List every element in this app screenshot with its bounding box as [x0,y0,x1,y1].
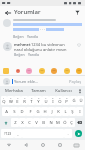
button[interactable]: Send [75,130,82,137]
staticText: A [5,109,8,115]
staticText: C [28,120,31,126]
button[interactable]: 1 [1,96,7,105]
staticText: 1 [3,96,5,99]
staticText: M [56,120,60,126]
button[interactable]: Yanıtla [28,52,39,57]
staticText: 4 [24,96,26,99]
button[interactable]: K [55,107,62,116]
button[interactable]: 7 [42,96,49,105]
staticText: Merhaba [5,88,23,94]
button[interactable]: S [10,107,18,116]
staticText: Yorumlar [14,8,41,16]
button[interactable]: Hide keyboard [0,140,17,150]
button[interactable]: Filter [73,8,82,17]
button[interactable]: Emoji [76,68,82,74]
button[interactable]: I [76,107,83,116]
button[interactable]: Shift [1,118,11,127]
staticText: , [17,131,19,137]
button[interactable]: D [18,107,26,116]
staticText: 8 [52,96,54,99]
staticText: 6 [38,96,40,99]
button[interactable]: Paylaş [69,79,82,84]
button[interactable]: Emoji [51,68,57,74]
staticText: I [52,99,54,105]
button[interactable]: Ü [77,96,84,105]
staticText: Ü [79,98,83,104]
button[interactable]: X [19,118,26,127]
button[interactable]: Back [3,8,12,17]
button[interactable]: F [26,107,34,116]
staticText: ?123 [4,131,12,136]
button[interactable]: Beğen [14,52,25,57]
button[interactable]: 8 [49,96,56,105]
button[interactable]: Beğen [13,34,24,39]
staticText: H [43,109,47,115]
button[interactable]: G [34,107,41,116]
button[interactable]: V [33,118,40,127]
staticText: L [64,109,67,115]
button[interactable]: Home [34,140,51,150]
button[interactable]: Z [11,118,19,127]
staticText: Z [14,120,17,126]
staticText: · · · [40,27,45,32]
button[interactable]: 9 [56,96,63,105]
button[interactable]: Emoji [26,68,32,74]
button[interactable]: Ğ [70,96,77,105]
button[interactable]: H [41,107,48,116]
button[interactable]: Backspace [75,118,84,127]
button[interactable]: Yorum ekle... [12,79,69,84]
button[interactable]: ?123 [1,129,14,138]
staticText: K [57,109,60,115]
button[interactable]: C [26,118,33,127]
staticText: G [36,109,40,115]
button[interactable]: 4 [21,96,28,105]
button[interactable]: Kullanıcı [51,86,76,95]
button[interactable]: 5 [28,96,35,105]
staticText: V [35,120,38,126]
button[interactable]: J [48,107,55,116]
button[interactable]: 3 [14,96,21,105]
button[interactable]: 6 [35,96,42,105]
button[interactable]: Like [76,42,82,48]
button[interactable]: Emoji [16,69,20,73]
staticText: W [9,99,13,105]
staticText: F [29,109,32,115]
button[interactable]: Ç [68,118,75,127]
staticText: 5 [31,96,33,99]
button[interactable]: Emoji [3,68,9,74]
button[interactable]: Ş [69,107,76,116]
button[interactable]: Yanıtla [27,34,38,39]
button[interactable]: 0 [63,96,70,105]
button[interactable]: mehmet [3,42,82,57]
staticText: Ş [71,109,74,115]
button[interactable]: · · · [3,19,82,39]
staticText: 1234 bu videonun [31,42,65,47]
staticText: R [23,99,26,105]
button[interactable]: M [54,118,61,127]
staticText: T [30,99,33,105]
button[interactable]: Ö [61,118,68,127]
button[interactable]: Back [17,140,34,150]
button[interactable]: Recent apps [51,140,68,150]
button[interactable]: N [47,118,54,127]
button[interactable]: A [2,107,10,116]
staticText: Q [2,99,6,105]
button[interactable]: 2 [7,96,14,105]
staticText: Kullanıcı [55,88,72,94]
button[interactable]: Tamam [26,86,51,95]
button[interactable]: L [62,107,69,116]
button[interactable]: Voice input [76,86,83,95]
button[interactable]: Keyboard switcher [68,140,85,150]
button[interactable]: B [40,118,47,127]
staticText: mehmet [14,42,31,47]
staticText: J [51,109,53,115]
staticText: X [21,120,24,126]
staticText: Yorum ekle... [14,79,39,84]
button[interactable]: Merhaba [2,86,26,95]
button[interactable]: Emoji [39,68,45,74]
staticText: 0 [66,96,68,99]
button[interactable]: , [14,129,22,138]
button[interactable]: Emoji [64,68,70,74]
